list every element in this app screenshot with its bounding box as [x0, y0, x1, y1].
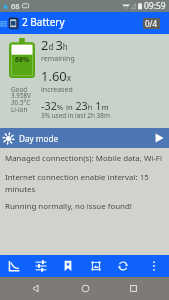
staticText: 09:59 — [144, 0, 166, 12]
button[interactable]: Day mode — [0, 128, 169, 148]
button[interactable]: Home — [74, 277, 96, 300]
staticText: Day mode — [19, 133, 59, 144]
staticText: 1.60x — [41, 67, 72, 85]
other: Next — [155, 133, 164, 143]
button[interactable]: Tune — [28, 255, 54, 277]
staticText: remaining — [41, 54, 75, 64]
button[interactable]: Recents — [122, 277, 144, 300]
staticText: 68 — [11, 1, 20, 11]
staticText: Running normally, no issue found! — [5, 201, 132, 212]
staticText: -32% in 23h 1m — [41, 98, 109, 113]
staticText: 68% — [15, 55, 30, 64]
staticText: Good 3.958V 30.5°C Li-ion — [11, 85, 31, 114]
button[interactable]: Back — [24, 277, 46, 300]
button[interactable]: Bookmark — [55, 255, 81, 277]
button[interactable]: Menu — [0, 12, 7, 34]
staticText: 2 Battery — [22, 15, 65, 29]
staticText: 0/4 — [145, 18, 158, 29]
staticText: Managed connection(s): Mobile data, Wi-F… — [5, 153, 162, 164]
staticText: 3% used in last 2h 38m — [41, 111, 110, 120]
button[interactable]: 0/4 — [143, 18, 160, 29]
staticText: increased — [41, 85, 73, 95]
button[interactable]: Chart — [1, 255, 27, 277]
button[interactable]: Crop — [83, 255, 109, 277]
button[interactable]: Refresh — [110, 255, 136, 277]
staticText: Internet connection enable interval: 15 — [5, 172, 149, 183]
staticText: 2d 3h — [41, 36, 68, 54]
staticText: minutes — [5, 184, 36, 195]
button[interactable]: More options — [146, 255, 162, 277]
